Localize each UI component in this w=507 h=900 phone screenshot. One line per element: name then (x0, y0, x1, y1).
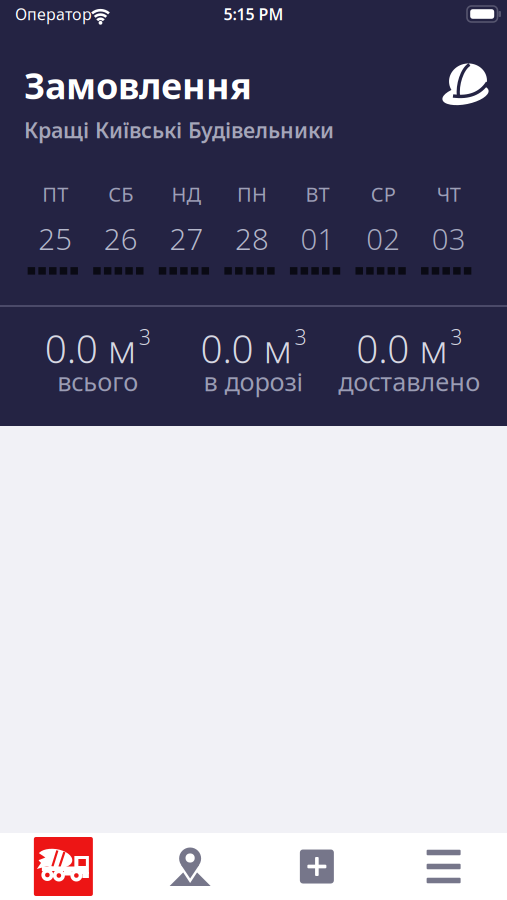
staticText: 28 (235, 219, 269, 258)
button[interactable]: Карта (127, 833, 254, 900)
staticText: СБ (108, 181, 133, 207)
staticText: 5:15 PM (223, 3, 283, 25)
staticText: 0.0 м (356, 323, 448, 374)
staticText: Кращі Київські Будівельники (24, 116, 334, 144)
button[interactable]: Замовлення (0, 833, 127, 900)
button[interactable]: ПН (219, 181, 285, 275)
staticText: 03 (432, 219, 466, 258)
button[interactable]: Меню (380, 833, 507, 900)
staticText: 01 (301, 219, 335, 258)
button[interactable]: НД (154, 181, 219, 275)
button[interactable]: ПТ (22, 181, 88, 275)
staticText: 0.0 м (45, 323, 137, 374)
staticText: ПН (237, 181, 267, 207)
staticText: ПТ (42, 181, 68, 207)
button[interactable]: ЧТ (416, 181, 481, 275)
staticText: в дорозі (203, 364, 303, 398)
staticText: ЧТ (437, 181, 461, 207)
staticText: СР (371, 181, 396, 207)
staticText: доставлено (338, 364, 480, 398)
staticText: 27 (169, 219, 203, 258)
button[interactable]: Профіль (441, 58, 491, 108)
button[interactable]: Додати (253, 833, 380, 900)
staticText: НД (171, 181, 201, 207)
button[interactable]: СБ (88, 181, 154, 275)
staticText: Оператор (15, 3, 92, 25)
staticText: 3 (294, 323, 306, 351)
staticText: 3 (450, 323, 462, 351)
button[interactable]: ВТ (285, 181, 350, 275)
staticText: 26 (104, 219, 138, 258)
staticText: 0.0 м (200, 323, 292, 374)
staticText: всього (57, 364, 138, 398)
staticText: Замовлення (24, 61, 252, 109)
button[interactable]: СР (350, 181, 416, 275)
staticText: 25 (38, 219, 72, 258)
staticText: 02 (366, 219, 400, 258)
staticText: ВТ (306, 181, 330, 207)
staticText: 3 (139, 323, 151, 351)
